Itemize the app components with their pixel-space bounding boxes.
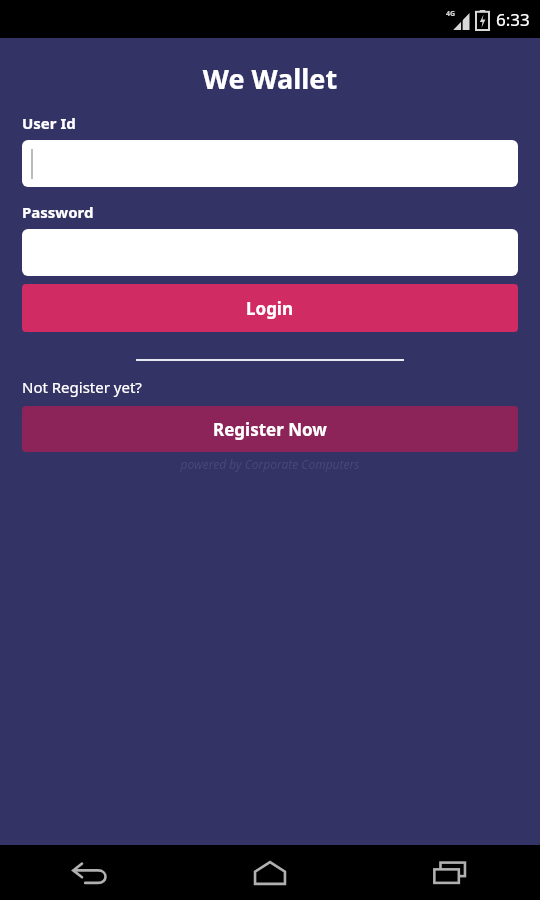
button[interactable] — [22, 229, 518, 276]
button[interactable]: Register Now — [22, 406, 518, 452]
staticText: User Id — [22, 113, 76, 133]
staticText: 4G — [446, 9, 456, 19]
staticText: powered by Corporate Computers — [0, 456, 540, 472]
button[interactable] — [22, 140, 518, 187]
button[interactable]: Home — [180, 845, 360, 900]
staticText: Not Register yet? — [22, 377, 142, 397]
button[interactable]: Recent apps — [360, 845, 540, 900]
staticText: Register Now — [213, 418, 327, 441]
staticText: 6:33 — [496, 8, 530, 31]
staticText: We Wallet — [0, 60, 540, 97]
button[interactable]: Login — [22, 284, 518, 332]
button[interactable]: Back — [0, 845, 180, 900]
staticText: Password — [22, 202, 94, 222]
staticText: Login — [246, 297, 294, 320]
